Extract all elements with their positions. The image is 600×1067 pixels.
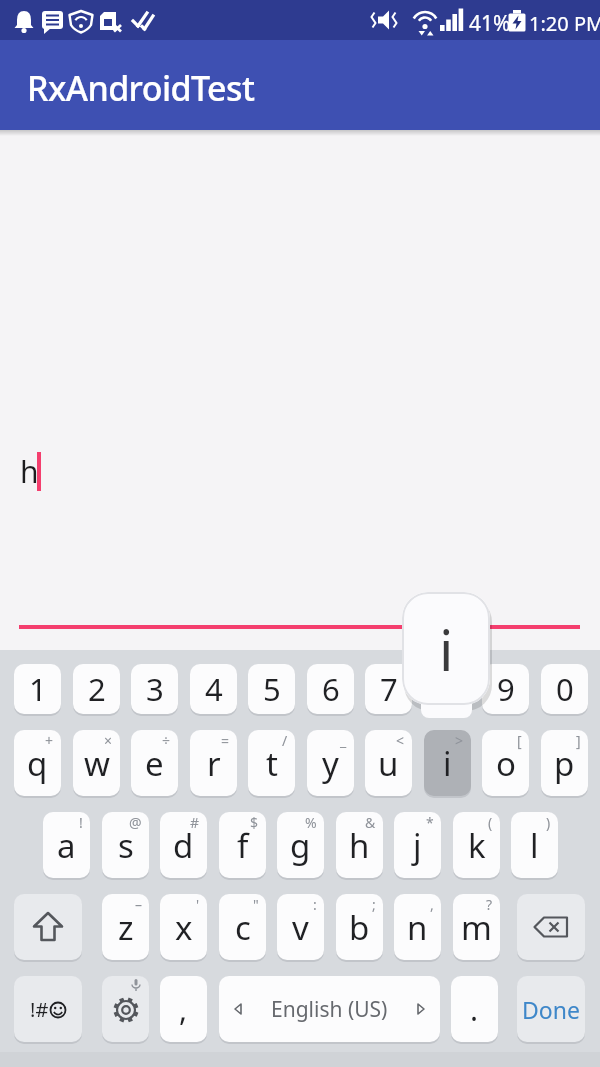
staticText: _ [340, 731, 347, 750]
staticText: ' [196, 895, 200, 914]
button[interactable]: !# [14, 976, 82, 1042]
button[interactable]: 0 [541, 664, 588, 714]
button[interactable]: 9 [482, 664, 529, 714]
button[interactable]: j [394, 812, 441, 878]
staticText: . [470, 989, 479, 1030]
button[interactable]: s [102, 812, 149, 878]
button[interactable]: l [511, 812, 558, 878]
button[interactable]: 7 [365, 664, 412, 714]
button[interactable]: d [160, 812, 207, 878]
staticText: ; [372, 895, 376, 914]
button[interactable]: o [482, 730, 529, 796]
staticText: English (US) [271, 995, 388, 1024]
staticText: : [313, 895, 317, 914]
button[interactable]: v [277, 894, 324, 960]
button[interactable]: h [336, 812, 383, 878]
staticText: !# [30, 996, 49, 1023]
staticText: & [365, 813, 376, 832]
staticText: e [145, 741, 164, 786]
button[interactable]: k [453, 812, 500, 878]
button[interactable]: q [14, 730, 61, 796]
button[interactable]: c [219, 894, 266, 960]
button[interactable]: , [160, 976, 207, 1042]
staticText: × [104, 731, 113, 750]
staticText: % [305, 813, 317, 832]
staticText: , [179, 989, 188, 1030]
staticText: j [413, 823, 422, 868]
button[interactable]: z [102, 894, 149, 960]
button[interactable]: 6 [307, 664, 354, 714]
staticText: ! [79, 813, 83, 832]
button[interactable]: 8 [424, 664, 471, 714]
staticText: g [290, 823, 311, 868]
button[interactable]: 4 [190, 664, 237, 714]
staticText: k [468, 823, 486, 868]
staticText: 5 [263, 668, 281, 710]
staticText: [ [517, 731, 522, 750]
staticText: 41% [469, 9, 511, 38]
staticText: * [426, 813, 434, 832]
staticText: ] [576, 731, 581, 750]
staticText: m [461, 905, 492, 950]
staticText: + [45, 731, 54, 750]
button[interactable]: g [277, 812, 324, 878]
button[interactable]: a [43, 812, 90, 878]
staticText: v [292, 905, 309, 950]
button[interactable]: f [219, 812, 266, 878]
staticText: y [322, 741, 339, 786]
staticText: $ [250, 813, 259, 832]
staticText: s [118, 823, 134, 868]
button[interactable]: x [160, 894, 207, 960]
button[interactable]: p [541, 730, 588, 796]
staticText: RxAndroidTest [27, 65, 255, 111]
staticText: i [443, 741, 452, 786]
staticText: 0 [556, 668, 574, 710]
staticText: 1:20 PM [529, 10, 600, 37]
button[interactable]: English (US) [219, 976, 440, 1042]
staticText: @ [129, 813, 142, 832]
staticText: f [237, 823, 249, 868]
staticText: c [235, 905, 251, 950]
button[interactable]: y [307, 730, 354, 796]
staticText: 7 [380, 668, 398, 710]
staticText: b [349, 905, 370, 950]
button[interactable]: 1 [14, 664, 61, 714]
staticText: 8 [439, 668, 457, 710]
staticText: – [135, 895, 142, 914]
staticText: 3 [146, 668, 164, 710]
button[interactable]: w [73, 730, 120, 796]
button[interactable] [0, 650, 600, 1067]
button[interactable] [102, 976, 149, 1042]
staticText: > [455, 731, 464, 750]
button[interactable]: b [336, 894, 383, 960]
staticText: r [207, 741, 221, 786]
button[interactable]: n [394, 894, 441, 960]
button[interactable] [14, 894, 82, 960]
staticText: l [530, 823, 539, 868]
button[interactable] [517, 894, 585, 960]
button[interactable]: t [248, 730, 295, 796]
staticText: x [175, 905, 193, 950]
staticText: d [173, 823, 194, 868]
button[interactable]: r [190, 730, 237, 796]
staticText: # [190, 813, 200, 832]
button[interactable]: 2 [73, 664, 120, 714]
staticText: q [27, 741, 48, 786]
button[interactable]: . [451, 976, 498, 1042]
staticText: " [253, 895, 259, 914]
staticText: 9 [497, 668, 515, 710]
button[interactable]: e [131, 730, 178, 796]
button[interactable]: i [424, 730, 471, 796]
staticText: t [266, 741, 278, 786]
button[interactable]: 3 [131, 664, 178, 714]
staticText: h [20, 451, 39, 492]
button[interactable]: Done [517, 976, 585, 1042]
staticText: i [439, 611, 454, 687]
button[interactable]: m [453, 894, 500, 960]
button[interactable]: u [365, 730, 412, 796]
staticText: 6 [322, 668, 340, 710]
staticText: n [407, 905, 428, 950]
staticText: , [430, 895, 434, 914]
button[interactable]: 5 [248, 664, 295, 714]
staticText: Done [522, 994, 580, 1025]
